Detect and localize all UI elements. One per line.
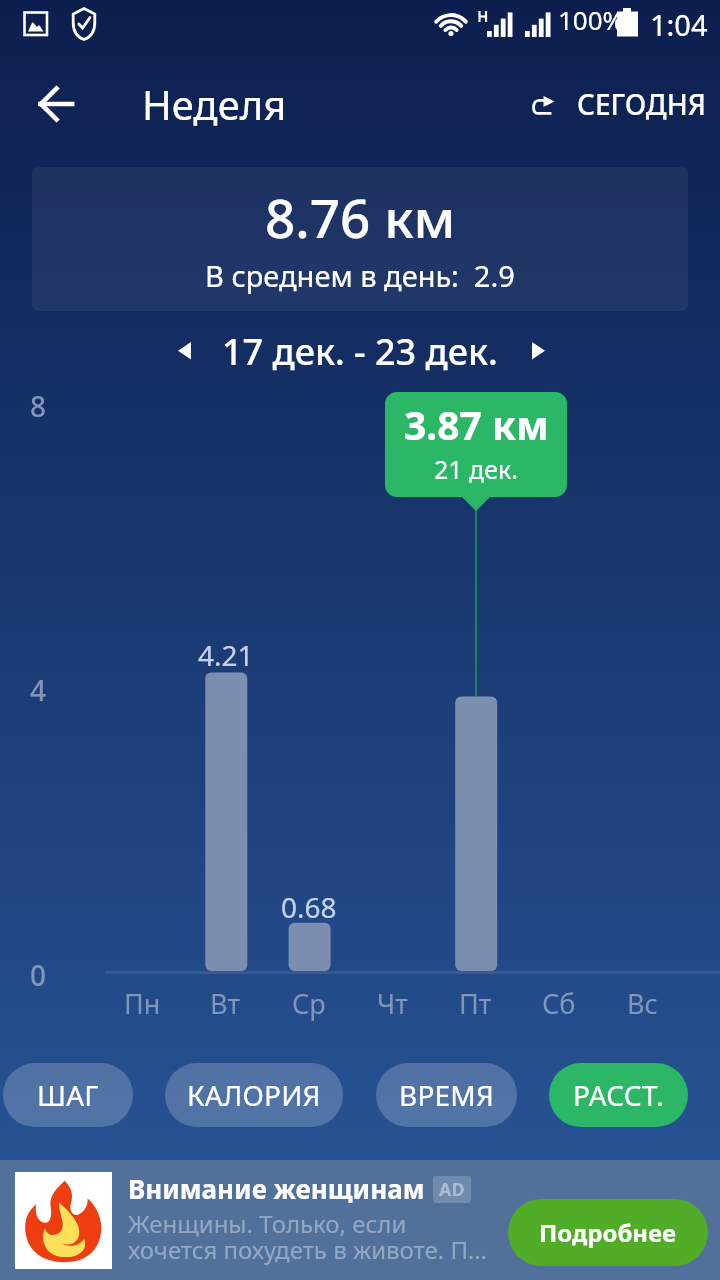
staticText: 4 xyxy=(30,671,47,709)
staticText: Сб xyxy=(542,985,576,1022)
staticText: Вс xyxy=(627,985,658,1022)
staticText: В среднем в день: 2.9 xyxy=(205,256,515,295)
staticText: 21 дек. xyxy=(434,452,519,486)
staticText: 1:04 xyxy=(650,5,708,44)
button[interactable]: Previous week xyxy=(155,323,213,381)
staticText: 0 xyxy=(30,956,47,994)
button[interactable]: ШАГ xyxy=(3,1063,133,1127)
staticText: КАЛОРИЯ xyxy=(187,1076,321,1114)
staticText: ШАГ xyxy=(37,1076,99,1114)
staticText: хочется похудеть в животе. П… xyxy=(128,1233,487,1266)
button[interactable]: 3.87 км xyxy=(385,392,567,497)
button[interactable]: Next week xyxy=(510,323,568,381)
staticText: 8 xyxy=(30,387,47,425)
staticText: AD xyxy=(439,1177,465,1202)
staticText: Женщины. Только, если xyxy=(128,1207,407,1240)
staticText: 4.21 xyxy=(198,636,254,674)
staticText: ВРЕМЯ xyxy=(399,1076,494,1114)
button[interactable]: 8.76 км xyxy=(32,167,688,311)
button[interactable]: Подробнее xyxy=(508,1199,708,1266)
staticText: Чт xyxy=(377,985,408,1022)
staticText: 3.87 км xyxy=(404,398,549,451)
staticText: Неделя xyxy=(142,77,287,131)
staticText: Ср xyxy=(292,985,326,1022)
button[interactable]: Redo xyxy=(516,79,572,135)
button[interactable]: Back xyxy=(28,76,84,132)
staticText: 8.76 км xyxy=(265,181,456,253)
button[interactable]: СЕГОДНЯ xyxy=(577,85,706,123)
staticText: Вт xyxy=(210,985,241,1022)
button[interactable]: ВРЕМЯ xyxy=(376,1063,517,1127)
staticText: СЕГОДНЯ xyxy=(577,85,706,123)
staticText: Пн xyxy=(124,985,161,1022)
button[interactable]: КАЛОРИЯ xyxy=(165,1063,343,1127)
staticText: Подробнее xyxy=(539,1216,677,1249)
staticText: Пт xyxy=(459,985,492,1022)
staticText: 17 дек. - 23 дек. xyxy=(222,327,498,376)
staticText: Внимание женщинам xyxy=(128,1171,425,1206)
button[interactable]: РАССТ. xyxy=(549,1063,688,1127)
staticText: 0.68 xyxy=(281,888,337,926)
staticText: РАССТ. xyxy=(573,1076,664,1114)
staticText: 100% xyxy=(558,2,625,37)
